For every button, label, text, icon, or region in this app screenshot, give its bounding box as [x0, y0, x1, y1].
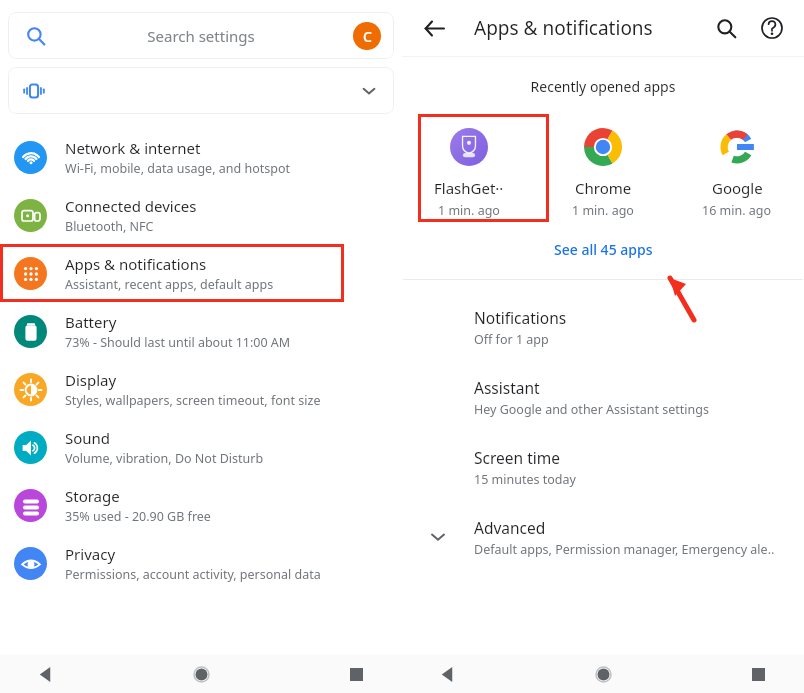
staticText: Storage: [65, 486, 120, 506]
staticText: Battery: [65, 312, 117, 332]
button[interactable]: Network & internet: [0, 128, 402, 186]
button[interactable]: Home: [583, 655, 623, 693]
button[interactable]: Google: [670, 112, 804, 222]
button[interactable]: Advanced: [402, 502, 804, 572]
staticText: Google: [712, 178, 763, 198]
staticText: 1 min. ago: [438, 202, 500, 219]
staticText: Advanced: [474, 517, 546, 538]
staticText: Volume, vibration, Do Not Disturb: [65, 450, 264, 467]
staticText: Search settings: [8, 26, 394, 46]
staticText: Assistant: [474, 377, 540, 398]
button[interactable]: FlashGet··: [402, 112, 536, 222]
button[interactable]: Notifications: [402, 292, 804, 362]
button[interactable]: Privacy: [0, 534, 402, 592]
button[interactable]: Recent apps: [336, 655, 376, 693]
staticText: 1 min. ago: [572, 202, 634, 219]
staticText: C: [363, 27, 372, 46]
button[interactable]: Connected devices: [0, 186, 402, 244]
staticText: 35% used - 20.90 GB free: [65, 508, 211, 525]
staticText: Apps & notifications: [65, 254, 207, 274]
staticText: Screen time: [474, 447, 560, 468]
staticText: Off for 1 app: [474, 331, 549, 348]
staticText: Privacy: [65, 544, 116, 564]
button[interactable]: Help: [752, 8, 792, 48]
button[interactable]: Back: [428, 655, 468, 693]
button[interactable]: Sound: [0, 418, 402, 476]
staticText: See all 45 apps: [554, 240, 653, 259]
button[interactable]: Assistant: [402, 362, 804, 432]
staticText: Display: [65, 370, 117, 390]
staticText: Wi-Fi, mobile, data usage, and hotspot: [65, 160, 290, 177]
staticText: Bluetooth, NFC: [65, 218, 154, 235]
button[interactable]: Search: [8, 12, 394, 59]
staticText: Connected devices: [65, 196, 197, 216]
staticText: Apps & notifications: [474, 15, 653, 41]
button[interactable]: See all 45 apps: [402, 240, 804, 259]
staticText: Styles, wallpapers, screen timeout, font…: [65, 392, 321, 409]
button[interactable]: Display: [0, 360, 402, 418]
staticText: Default apps, Permission manager, Emerge…: [474, 541, 775, 558]
staticText: Assistant, recent apps, default apps: [65, 276, 274, 293]
staticText: Sound: [65, 428, 111, 448]
staticText: Network & internet: [65, 138, 201, 158]
button[interactable]: Chrome: [536, 112, 670, 222]
button[interactable]: Recent apps: [738, 655, 778, 693]
staticText: FlashGet··: [434, 178, 504, 198]
staticText: 16 min. ago: [702, 202, 772, 219]
staticText: Chrome: [575, 178, 632, 198]
button[interactable]: [8, 67, 394, 114]
button[interactable]: Screen time: [402, 432, 804, 502]
staticText: Recently opened apps: [402, 77, 804, 96]
button[interactable]: C: [353, 22, 381, 50]
button[interactable]: Storage: [0, 476, 402, 534]
button[interactable]: Back: [414, 8, 454, 48]
staticText: 73% - Should last until about 11:00 AM: [65, 334, 291, 351]
staticText: Notifications: [474, 307, 567, 328]
button[interactable]: Home: [181, 655, 221, 693]
staticText: 15 minutes today: [474, 471, 576, 488]
staticText: Permissions, account activity, personal …: [65, 566, 321, 583]
button[interactable]: Battery: [0, 302, 402, 360]
button[interactable]: Apps & notifications: [0, 244, 402, 302]
staticText: Hey Google and other Assistant settings: [474, 401, 709, 418]
button[interactable]: Search: [706, 8, 746, 48]
button[interactable]: Back: [26, 655, 66, 693]
other: Search: [26, 26, 46, 46]
